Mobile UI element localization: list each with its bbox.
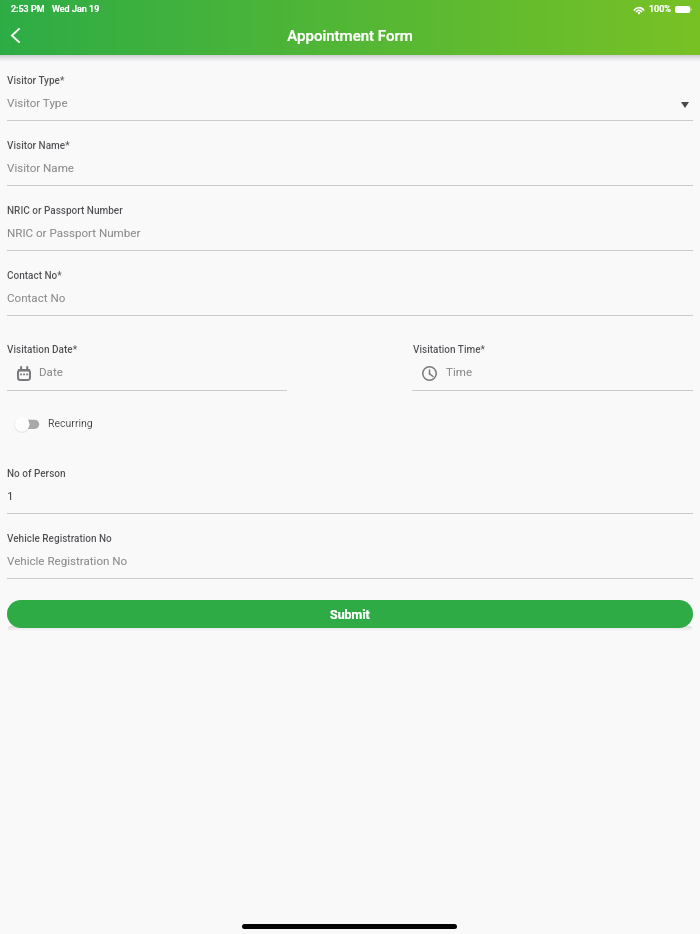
button[interactable]: Submit bbox=[7, 600, 693, 628]
staticText: NRIC or Passport Number bbox=[7, 205, 123, 217]
button[interactable]: Contact No* bbox=[0, 261, 700, 316]
staticText: NRIC or Passport Number bbox=[7, 226, 141, 240]
staticText: Wed Jan 19 bbox=[52, 4, 100, 15]
button[interactable]: No of Person bbox=[0, 459, 700, 514]
button[interactable]: Back bbox=[0, 19, 32, 51]
staticText: Recurring bbox=[48, 417, 93, 429]
staticText: Vehicle Registration No bbox=[7, 554, 128, 568]
staticText: Contact No bbox=[7, 291, 66, 305]
button[interactable]: Visitation Time* bbox=[412, 344, 693, 391]
button[interactable]: Visitor Type* bbox=[0, 66, 700, 121]
staticText: Visitor Type bbox=[7, 96, 68, 110]
button[interactable]: Visitation Date* bbox=[7, 344, 287, 391]
staticText: 100% bbox=[649, 4, 671, 15]
staticText: Time bbox=[446, 365, 473, 379]
staticText: Contact No* bbox=[7, 270, 62, 282]
other: Open dropdown bbox=[681, 102, 689, 108]
other: Wi-Fi bbox=[633, 5, 645, 15]
button[interactable]: Recurring bbox=[13, 414, 94, 435]
other: Battery 100 percent bbox=[675, 6, 692, 13]
staticText: Date bbox=[39, 365, 63, 379]
staticText: Visitor Type* bbox=[7, 75, 65, 87]
button[interactable]: Visitor Name* bbox=[0, 131, 700, 186]
button[interactable]: Vehicle Registration No bbox=[0, 524, 700, 579]
staticText: 1 bbox=[7, 489, 14, 503]
staticText: Visitor Name bbox=[7, 161, 74, 175]
staticText: Visitor Name* bbox=[7, 140, 70, 152]
staticText: Visitation Time* bbox=[413, 344, 485, 356]
button[interactable]: NRIC or Passport Number bbox=[0, 196, 700, 251]
staticText: Submit bbox=[330, 607, 370, 622]
staticText: 2:53 PM bbox=[11, 4, 45, 15]
staticText: No of Person bbox=[7, 468, 66, 480]
staticText: Vehicle Registration No bbox=[7, 533, 112, 545]
staticText: Appointment Form bbox=[287, 27, 413, 45]
staticText: Visitation Date* bbox=[7, 344, 78, 356]
